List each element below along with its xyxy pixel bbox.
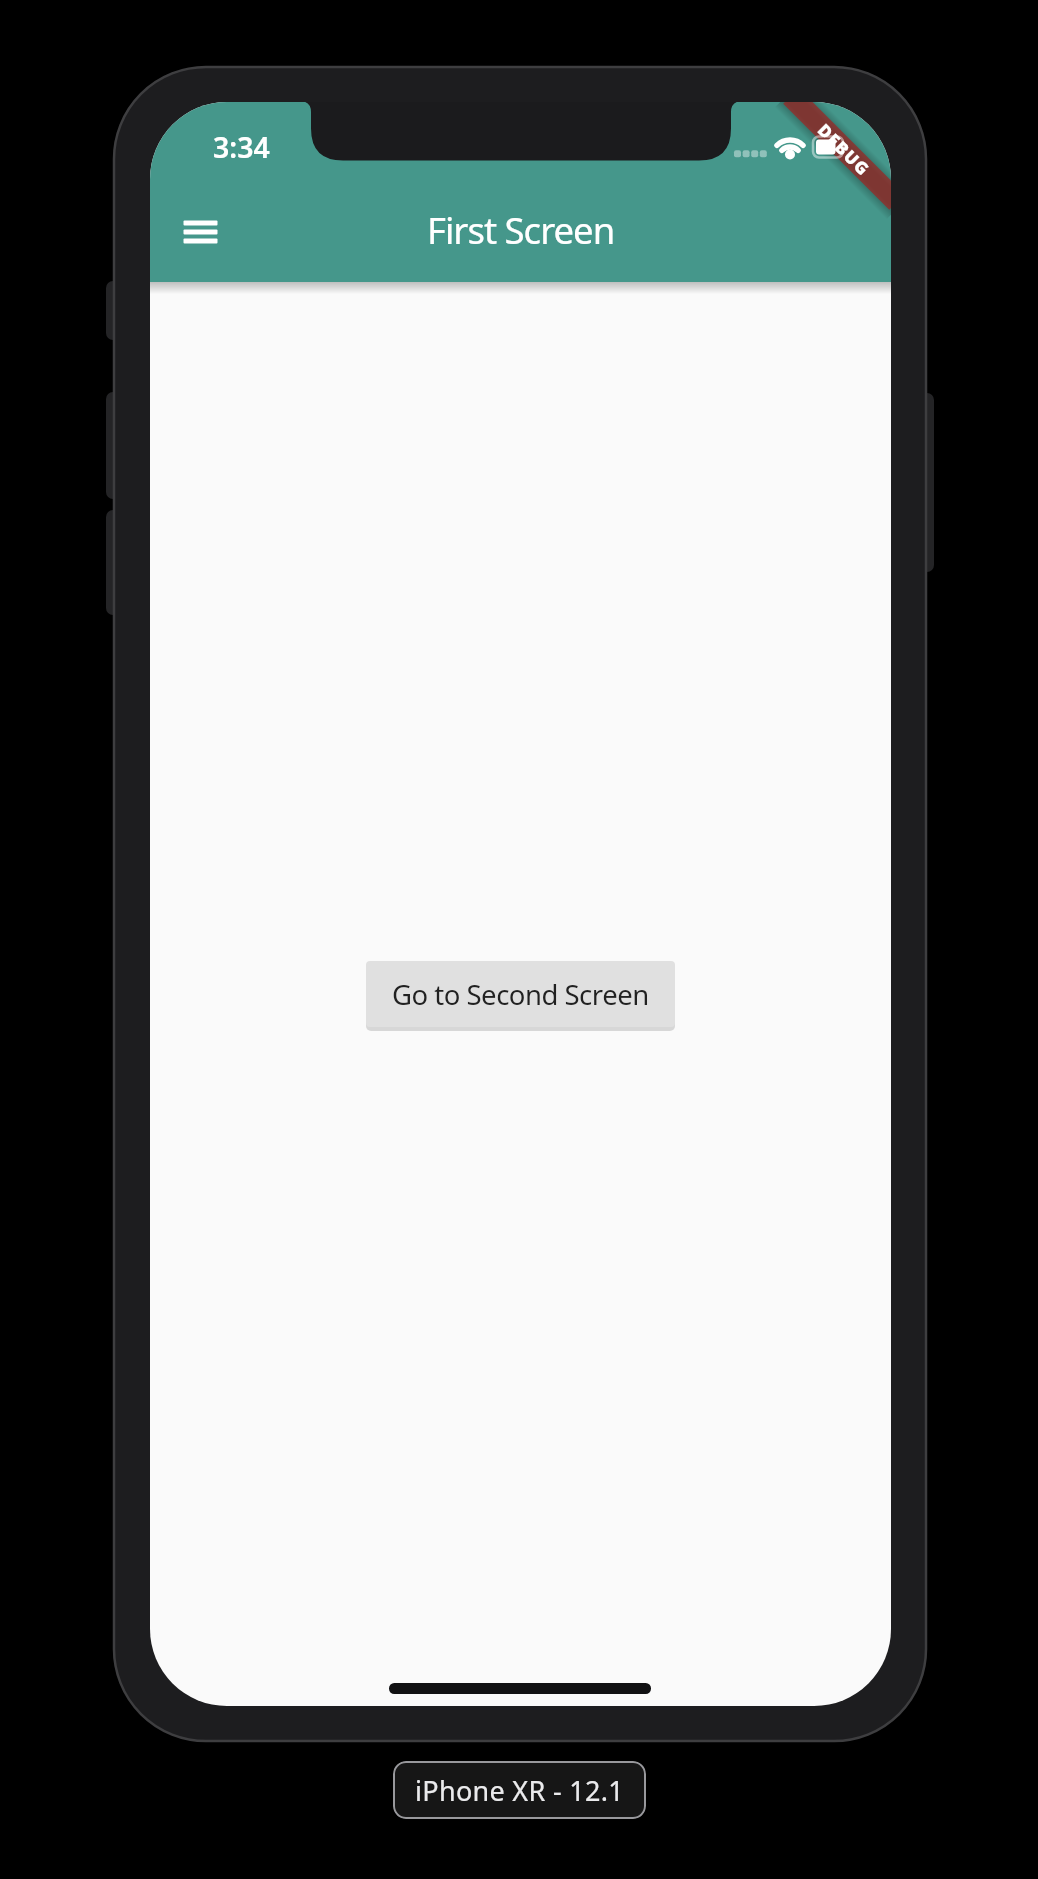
staticText: First Screen	[427, 205, 615, 247]
staticText: Go to Second Screen	[392, 976, 649, 1013]
staticText: 3:34	[213, 128, 270, 167]
staticText: iPhone XR - 12.1	[415, 1772, 624, 1809]
staticText: DEBUG	[814, 119, 875, 180]
button[interactable]: Go to Second Screen	[366, 961, 675, 1027]
